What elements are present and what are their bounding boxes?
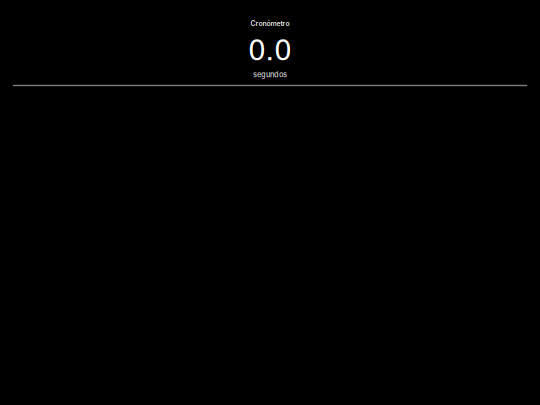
staticText: segundos <box>253 70 287 79</box>
staticText: 0.0 <box>248 25 291 69</box>
staticText: Cronómetro <box>250 19 289 28</box>
button[interactable]: Cronómetro <box>0 0 540 79</box>
